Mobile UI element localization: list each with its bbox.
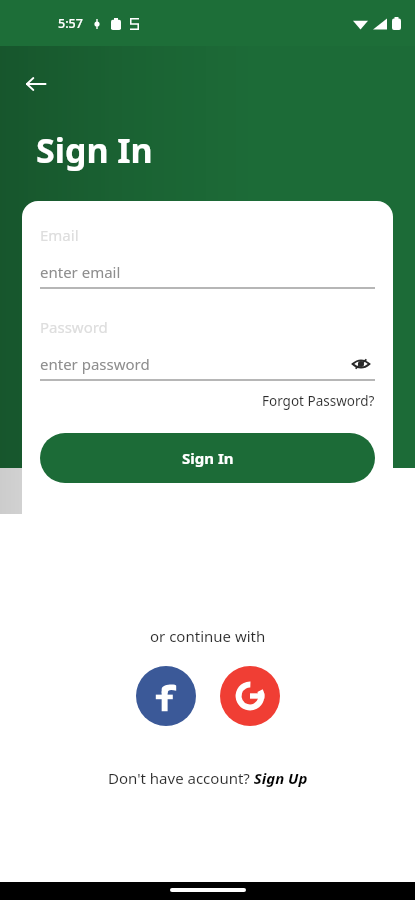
button[interactable]: Continue with Google (220, 666, 280, 726)
staticText: Password (40, 317, 108, 337)
staticText: Don't have account? Sign Up (108, 768, 308, 788)
staticText: or continue with (150, 626, 266, 646)
button[interactable]: Forgot Password? (260, 389, 377, 413)
staticText: enter password (40, 354, 150, 374)
button[interactable]: Don't have account? Sign Up (102, 764, 314, 792)
staticText: Forgot Password? (262, 392, 375, 410)
button[interactable]: Sign In (40, 433, 375, 483)
staticText: Sign In (36, 127, 153, 173)
staticText: enter email (40, 262, 121, 282)
staticText: Email (40, 225, 79, 245)
button[interactable]: Back (14, 62, 58, 106)
button[interactable]: Continue with Facebook (136, 666, 196, 726)
staticText: Sign In (182, 448, 234, 468)
button[interactable]: Show password (347, 350, 375, 378)
button[interactable]: enter email (40, 257, 375, 287)
staticText: 5:57 (58, 15, 83, 32)
button[interactable]: enter password (40, 349, 347, 379)
